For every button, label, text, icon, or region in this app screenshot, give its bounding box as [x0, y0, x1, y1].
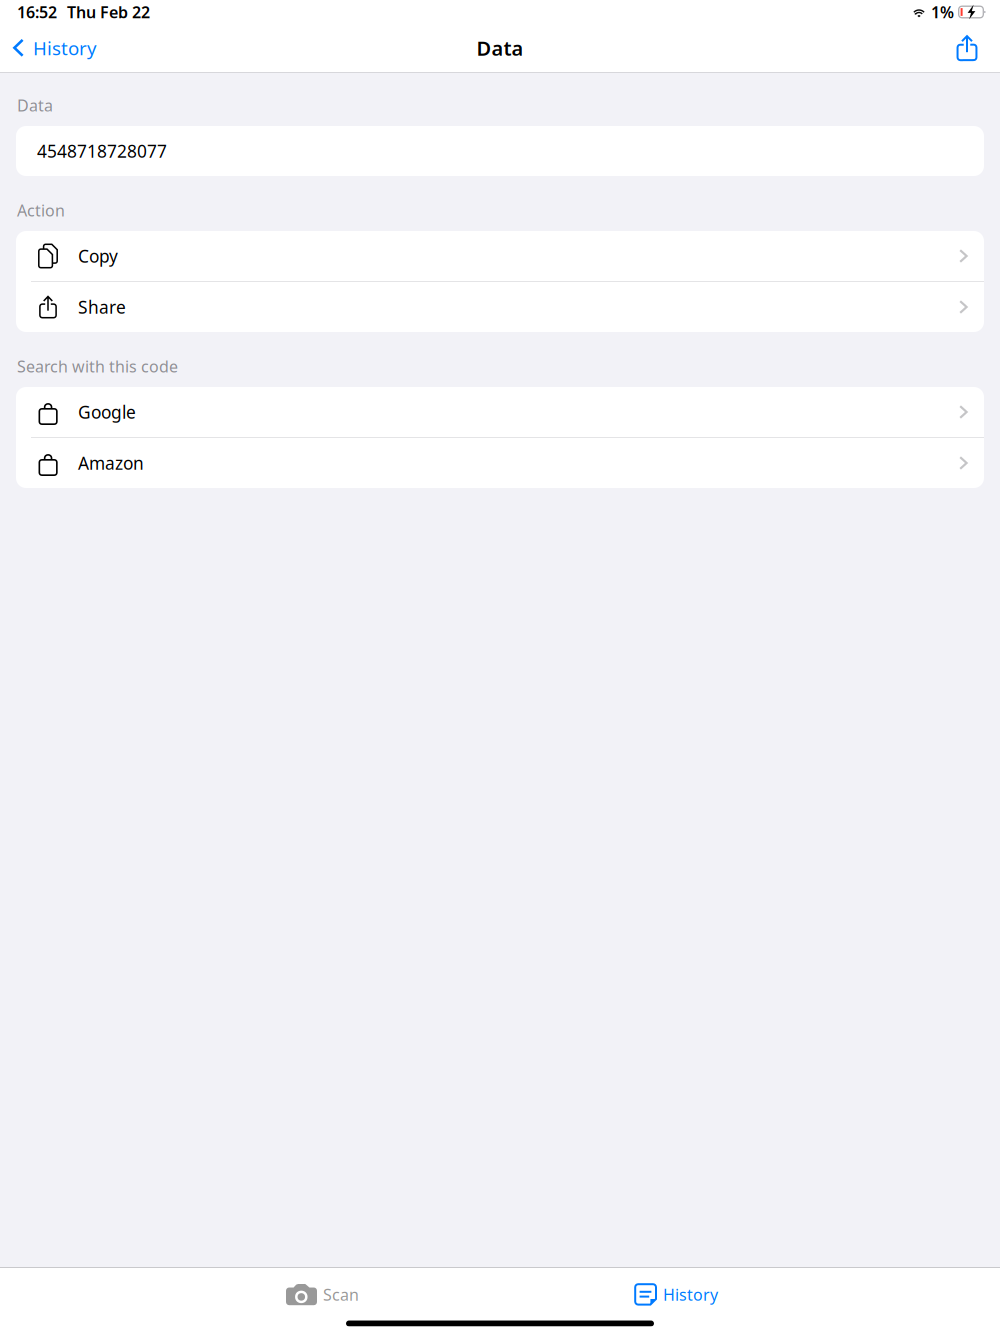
button[interactable]: History	[622, 1268, 730, 1321]
button[interactable]: Google	[16, 387, 984, 437]
staticText: Copy	[78, 244, 118, 267]
staticText: 1%	[931, 1, 954, 23]
staticText: History	[663, 1284, 718, 1305]
staticText: Google	[78, 400, 136, 423]
button[interactable]: History	[0, 24, 107, 72]
staticText: Scan	[323, 1284, 359, 1305]
staticText: 4548718728077	[37, 139, 167, 162]
button[interactable]: Share	[16, 282, 984, 332]
staticText: Amazon	[78, 451, 144, 474]
staticText: Data	[476, 35, 523, 61]
staticText: 16:52	[17, 1, 57, 23]
staticText: Data	[17, 95, 53, 116]
staticText: History	[33, 36, 97, 60]
staticText: Thu Feb 22	[67, 1, 150, 23]
staticText: Share	[78, 295, 126, 318]
button[interactable]: Amazon	[16, 438, 984, 488]
button[interactable]: Share	[944, 24, 990, 72]
staticText: Search with this code	[17, 356, 178, 377]
staticText: Action	[17, 200, 65, 221]
button[interactable]: Scan	[274, 1268, 371, 1321]
button[interactable]: Copy	[16, 231, 984, 281]
